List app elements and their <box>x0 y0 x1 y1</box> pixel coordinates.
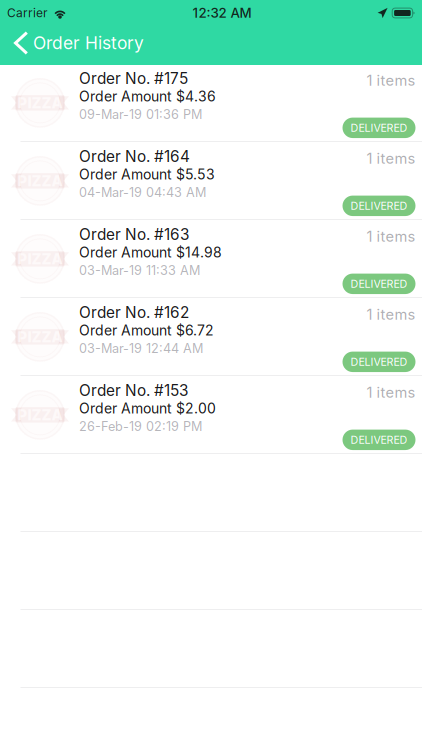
staticText: PIZZA <box>17 328 62 346</box>
staticText: 26-Feb-19 02:19 PM <box>79 419 202 434</box>
staticText: Order History <box>33 32 144 53</box>
button[interactable]: PIZZA <box>0 142 422 220</box>
staticText: Order Amount $14.98 <box>79 244 222 261</box>
staticText: 03-Mar-19 12:44 AM <box>79 341 203 356</box>
staticText: Carrier <box>7 6 48 20</box>
staticText: DELIVERED <box>350 277 407 290</box>
staticText: Order No. #164 <box>79 147 190 166</box>
staticText: PIZZA <box>17 172 62 190</box>
staticText: Order Amount $4.36 <box>79 88 216 105</box>
staticText: DELIVERED <box>350 355 407 368</box>
button[interactable]: PIZZA <box>0 298 422 376</box>
staticText: PIZZA <box>17 406 62 424</box>
staticText: 1 items <box>366 72 415 89</box>
staticText: Order Amount $2.00 <box>79 400 216 417</box>
button[interactable]: PIZZA <box>0 220 422 298</box>
staticText: PIZZA <box>17 250 62 268</box>
staticText: Order Amount $5.53 <box>79 166 215 183</box>
staticText: 1 items <box>366 150 415 167</box>
staticText: Order No. #153 <box>79 381 188 400</box>
staticText: DELIVERED <box>350 199 407 212</box>
staticText: Order No. #175 <box>79 69 188 88</box>
staticText: 04-Mar-19 04:43 AM <box>79 185 206 200</box>
staticText: Order No. #162 <box>79 303 189 322</box>
button[interactable]: PIZZA <box>0 376 422 454</box>
staticText: DELIVERED <box>350 121 407 134</box>
staticText: 1 items <box>366 384 415 401</box>
staticText: 03-Mar-19 11:33 AM <box>79 263 200 278</box>
staticText: Order No. #163 <box>79 225 189 244</box>
staticText: 09-Mar-19 01:36 PM <box>79 107 202 122</box>
staticText: DELIVERED <box>350 433 407 446</box>
button[interactable]: Back <box>0 26 422 65</box>
staticText: PIZZA <box>17 94 62 112</box>
button[interactable]: PIZZA <box>0 64 422 142</box>
staticText: Order Amount $6.72 <box>79 322 214 339</box>
staticText: 12:32 AM <box>193 5 252 21</box>
staticText: 1 items <box>366 228 415 245</box>
staticText: 1 items <box>366 306 415 323</box>
